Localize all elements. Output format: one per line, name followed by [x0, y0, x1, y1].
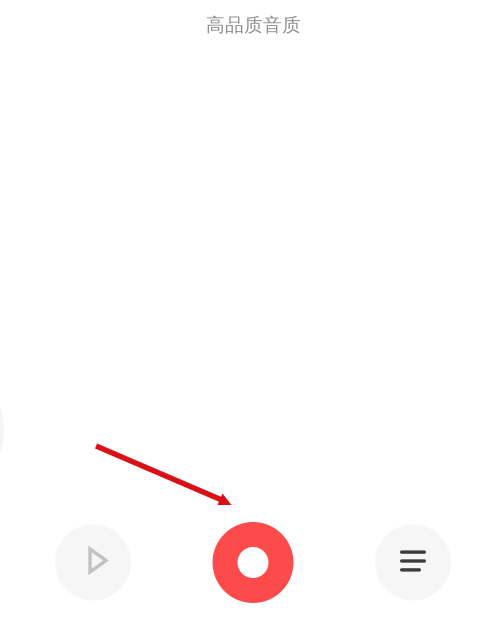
button[interactable]: Play: [55, 524, 131, 600]
button[interactable]: Record: [212, 522, 293, 603]
button[interactable]: Recordings list: [375, 524, 451, 600]
staticText: 高品质音质: [206, 13, 301, 36]
